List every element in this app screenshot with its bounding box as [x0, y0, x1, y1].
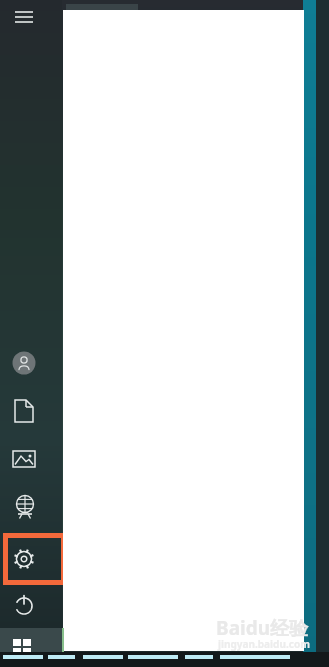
staticText: jingyan.baidu.com: [218, 637, 310, 651]
button[interactable]: Start: [4, 628, 48, 667]
button[interactable]: Network: [0, 483, 48, 531]
button[interactable]: Pictures: [0, 435, 48, 483]
button[interactable]: Documents: [0, 387, 48, 435]
button[interactable]: Expand menu: [0, 0, 48, 34]
button[interactable]: Account: [0, 339, 48, 387]
staticText: Baidu经验: [216, 615, 309, 641]
button[interactable]: Power: [0, 581, 48, 629]
button[interactable]: Settings: [3, 533, 66, 585]
